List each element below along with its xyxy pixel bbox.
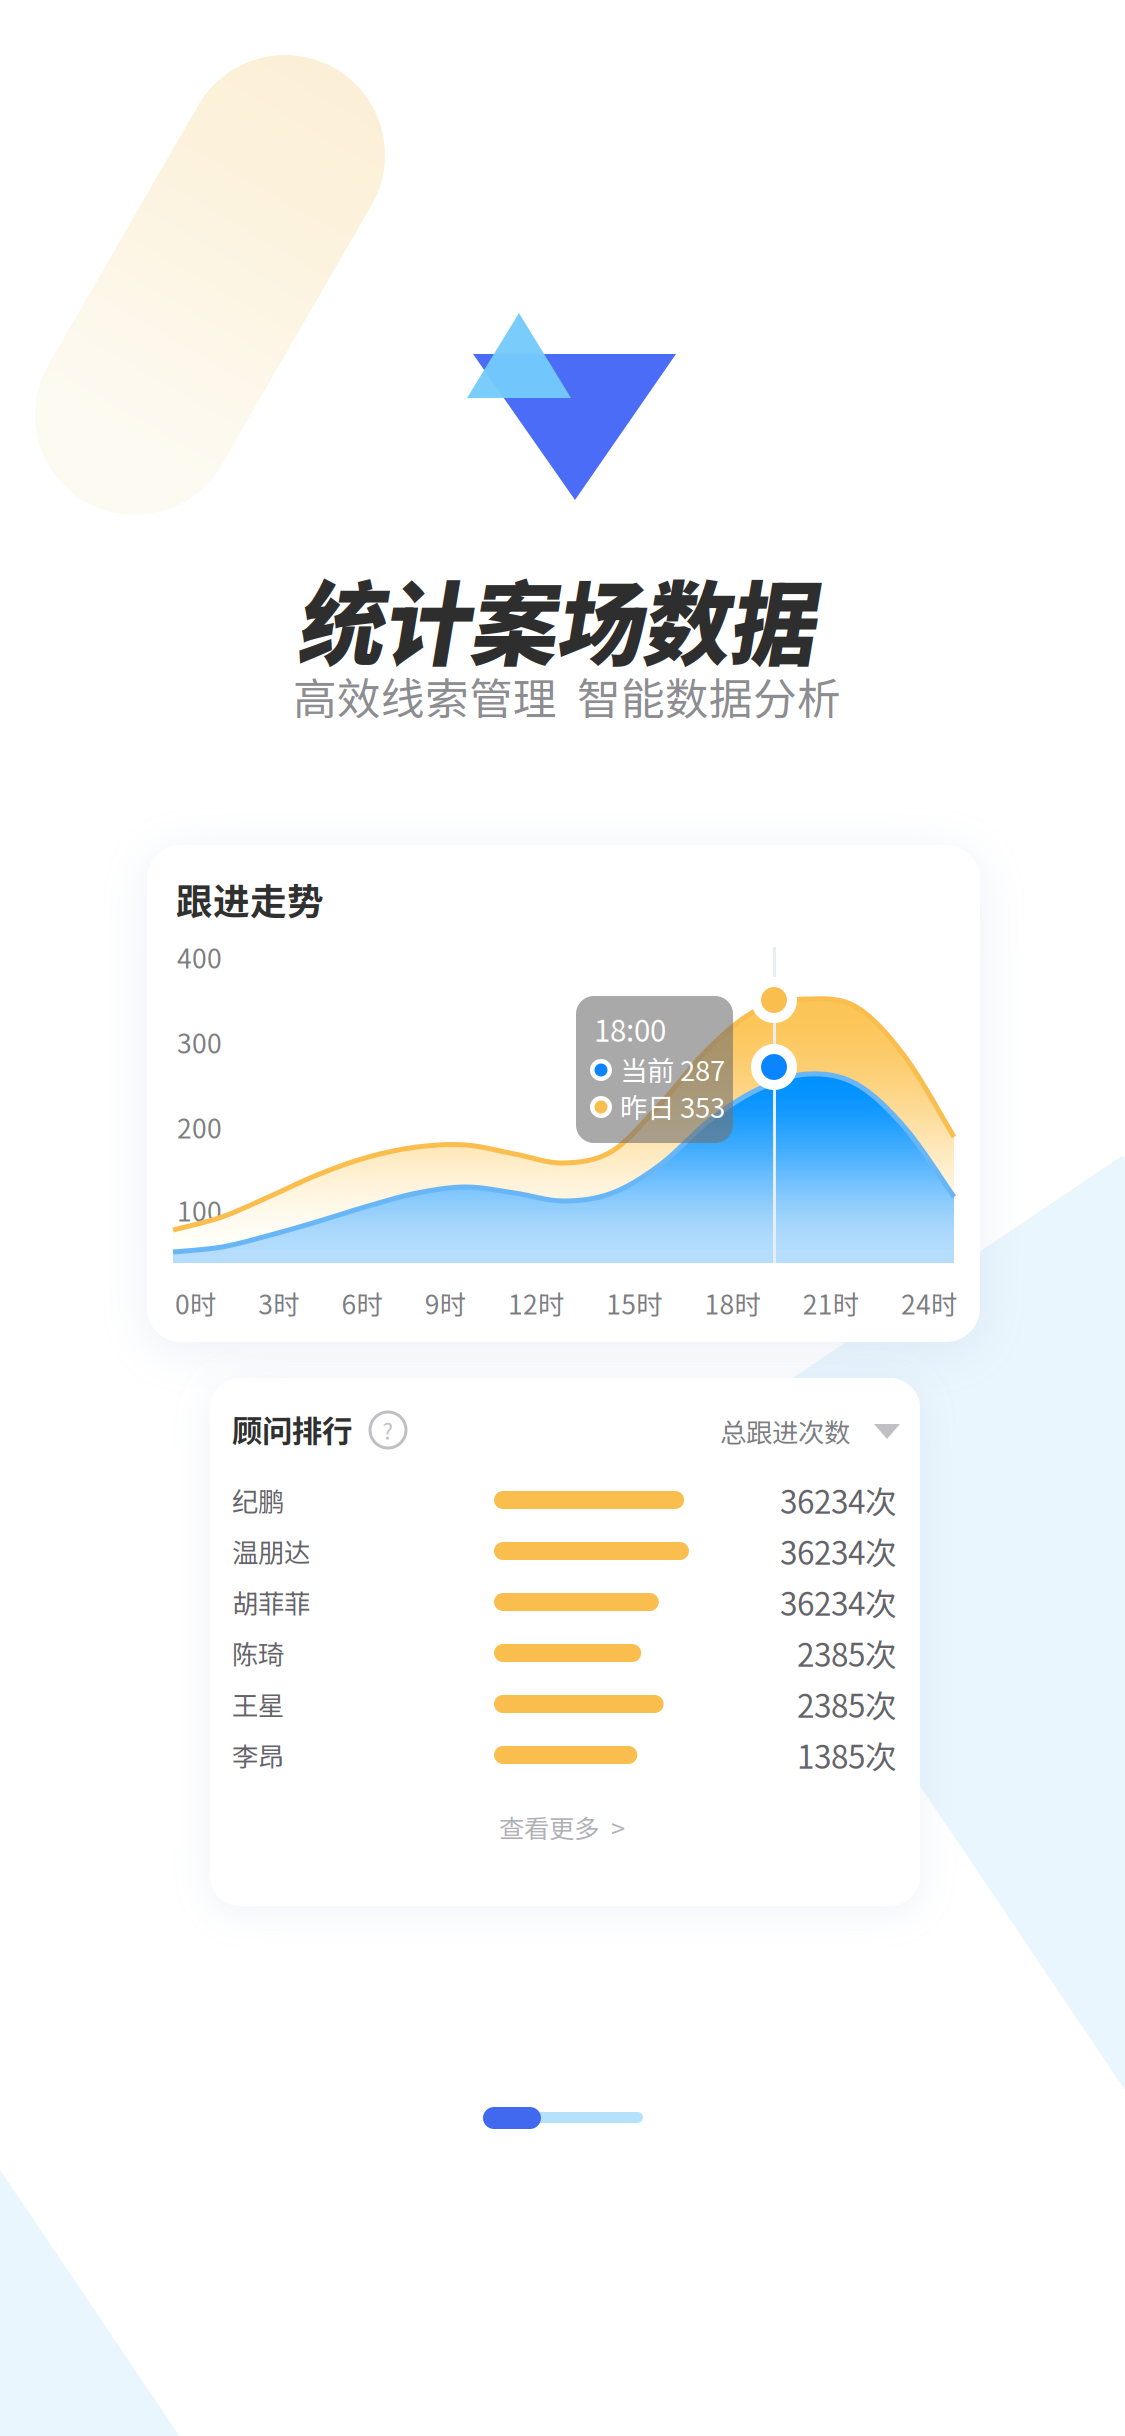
staticText: 18:00 [594, 1008, 666, 1050]
staticText: 21时 [803, 1284, 859, 1322]
staticText: 昨日 353 [620, 1086, 725, 1126]
staticText: 胡菲菲 [232, 1583, 310, 1621]
button[interactable]: 查看更多 > [0, 0, 1125, 2436]
staticText: 36234次 [780, 1579, 896, 1625]
staticText: 纪鹏 [232, 1481, 284, 1519]
staticText: ? [382, 1414, 393, 1446]
staticText: 12时 [508, 1284, 564, 1322]
staticText: 高效线索管理 智能数据分析 [293, 664, 841, 728]
staticText: 200 [177, 1108, 222, 1146]
staticText: 温朋达 [232, 1532, 310, 1570]
staticText: 2385次 [797, 1681, 896, 1727]
staticText: 9时 [425, 1284, 466, 1322]
staticText: 李昂 [232, 1736, 284, 1774]
staticText: 王星 [232, 1685, 284, 1723]
staticText: 100 [177, 1191, 222, 1229]
button[interactable]: 总跟进次数 [0, 0, 1125, 2436]
staticText: 顾问排行 [232, 1407, 352, 1451]
staticText: 400 [177, 938, 222, 976]
staticText: 6时 [341, 1284, 382, 1322]
staticText: 统计案场数据 [291, 552, 837, 684]
staticText: 300 [177, 1023, 222, 1061]
staticText: 查看更多 > [499, 1809, 625, 1845]
staticText: 当前 287 [620, 1049, 725, 1089]
staticText: 2385次 [797, 1630, 896, 1676]
staticText: 陈琦 [232, 1634, 284, 1672]
staticText: 36234次 [780, 1528, 896, 1574]
staticText: 18时 [704, 1284, 760, 1322]
staticText: 15时 [606, 1284, 662, 1322]
staticText: 1385次 [797, 1732, 896, 1778]
staticText: 24时 [901, 1284, 957, 1322]
staticText: 0时 [175, 1284, 216, 1322]
staticText: 3时 [258, 1284, 299, 1322]
staticText: 36234次 [780, 1477, 896, 1523]
staticText: 跟进走势 [176, 872, 324, 925]
staticText: 总跟进次数 [720, 1412, 850, 1450]
